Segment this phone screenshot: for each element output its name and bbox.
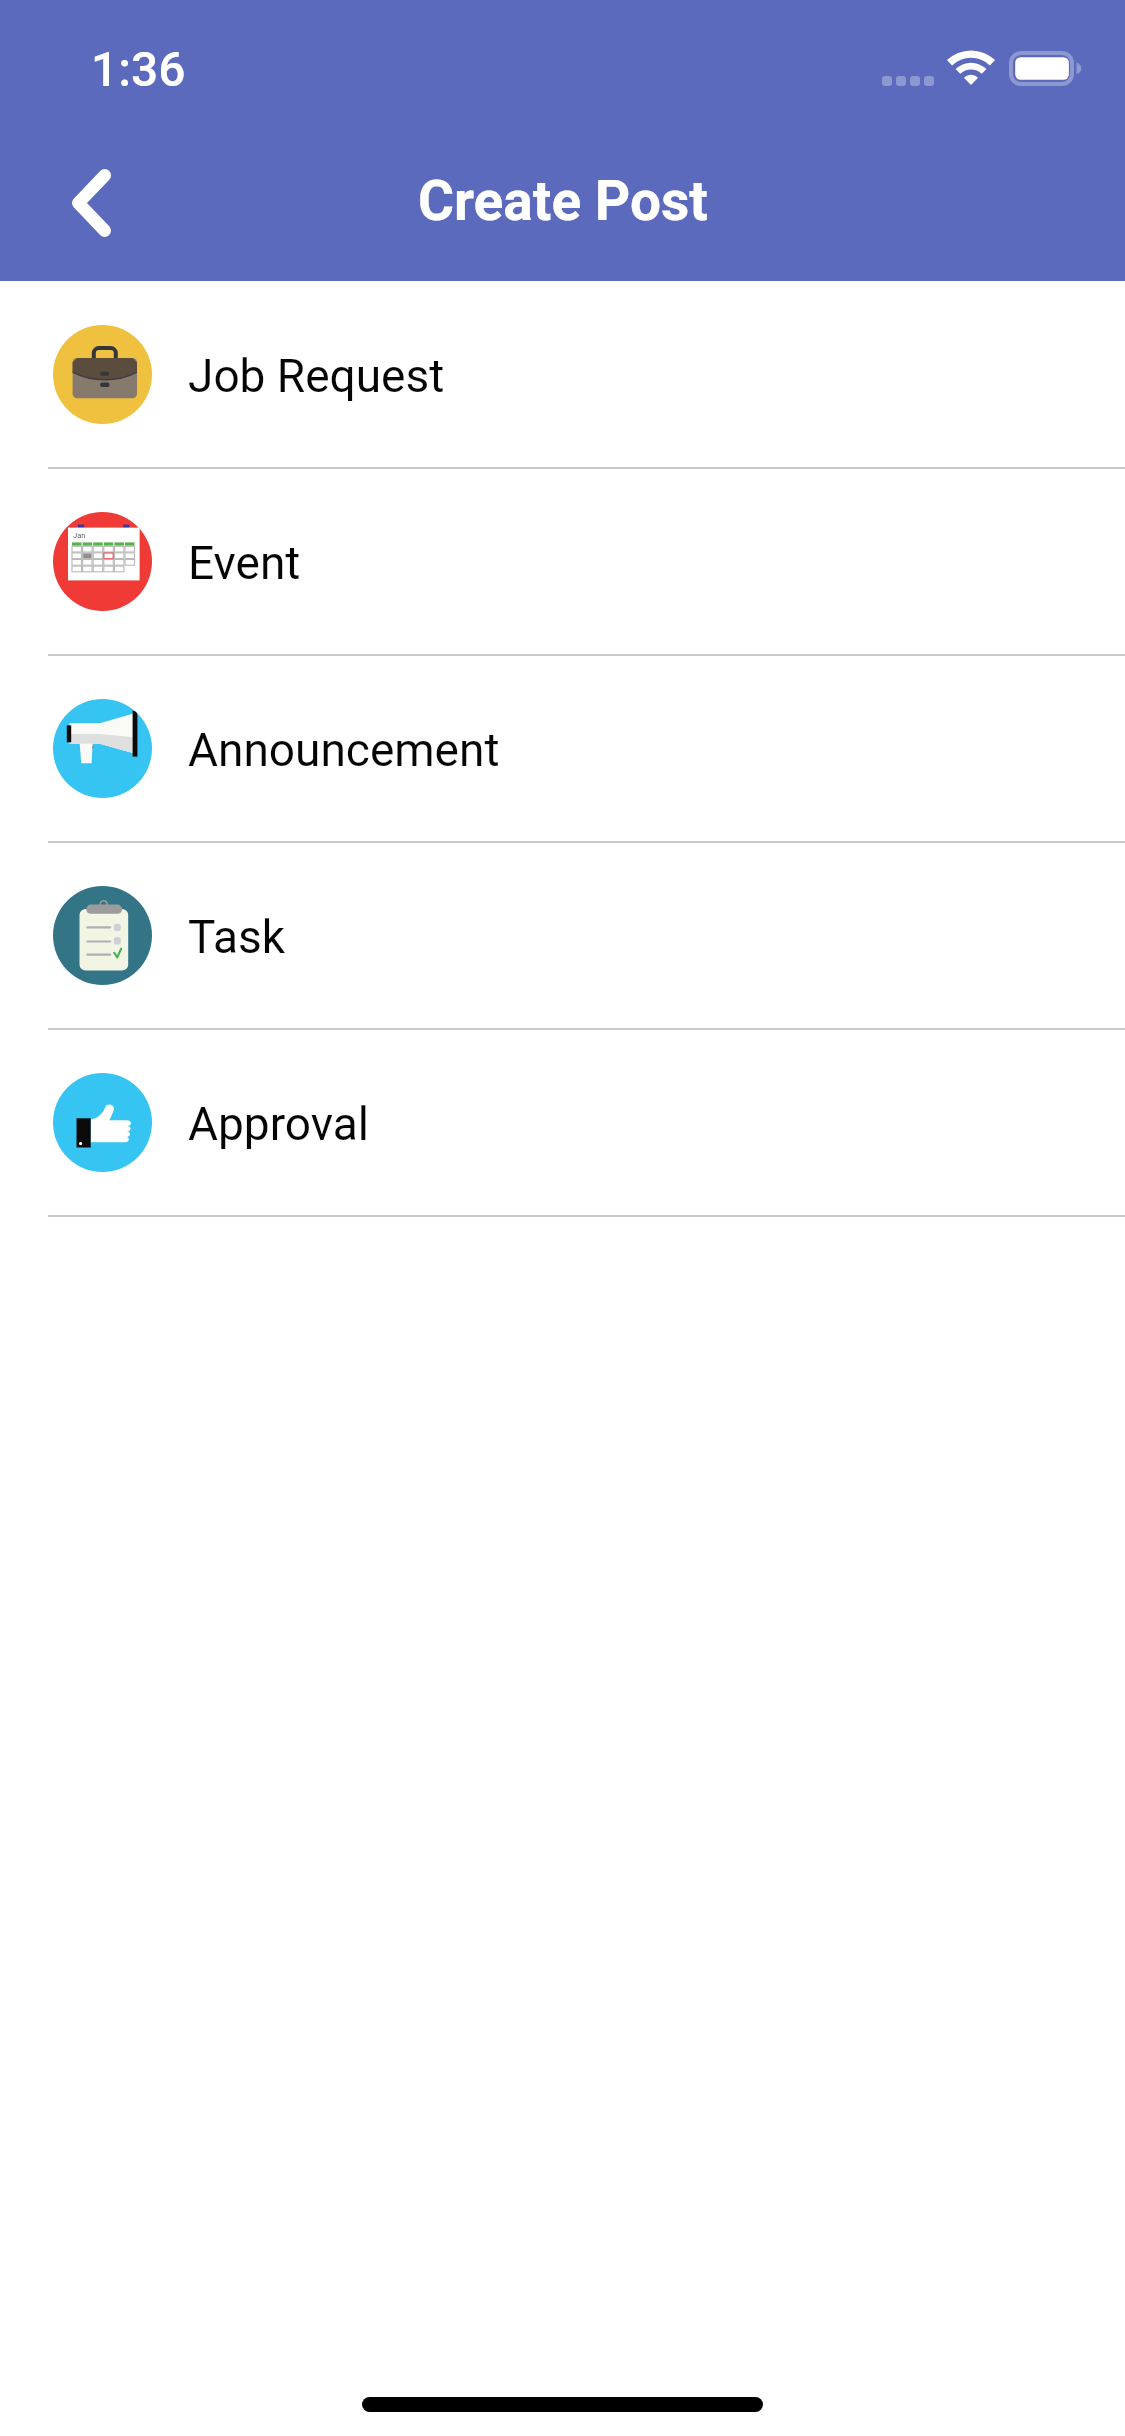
staticText: Event: [188, 536, 301, 590]
button[interactable]: Back: [29, 141, 153, 265]
staticText: Jan: [73, 531, 86, 540]
staticText: 1:36: [91, 41, 186, 97]
staticText: Job Request: [188, 349, 445, 403]
staticText: Create Post: [418, 169, 708, 233]
staticText: Approval: [188, 1097, 369, 1151]
staticText: Task: [188, 910, 285, 964]
button[interactable]: Task: [0, 842, 1125, 1028]
button[interactable]: Job Request: [0, 281, 1125, 467]
staticText: Announcement: [188, 723, 500, 777]
button[interactable]: Jan: [0, 468, 1125, 654]
button[interactable]: Approval: [0, 1029, 1125, 1215]
button[interactable]: Announcement: [0, 655, 1125, 841]
